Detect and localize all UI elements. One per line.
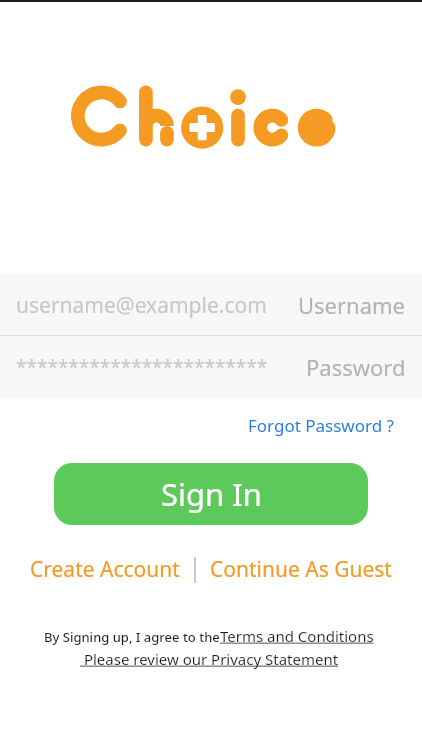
button[interactable]: username@example.com xyxy=(0,274,422,336)
button[interactable]: Forgot Password ? xyxy=(220,410,422,441)
staticText: Username xyxy=(298,290,406,320)
staticText: username@example.com xyxy=(16,291,267,320)
staticText: Create Account xyxy=(30,555,180,584)
staticText: Terms and Conditions xyxy=(220,626,378,646)
staticText: Password xyxy=(306,352,406,382)
button[interactable]: Please review our Privacy Statement xyxy=(80,649,343,669)
staticText: Sign In xyxy=(161,473,262,515)
staticText: Forgot Password ? xyxy=(248,414,394,437)
button[interactable]: Sign In xyxy=(54,463,368,525)
staticText: ************************ xyxy=(16,354,268,380)
button[interactable]: ************************ xyxy=(0,336,422,398)
staticText: By Signing up, I agree to the xyxy=(44,628,220,646)
button[interactable]: Terms and Conditions xyxy=(220,626,378,646)
button[interactable]: Continue As Guest xyxy=(196,549,406,590)
staticText: Continue As Guest xyxy=(210,555,392,584)
staticText: Please review our Privacy Statement xyxy=(80,649,343,669)
button[interactable]: Create Account xyxy=(16,549,194,590)
